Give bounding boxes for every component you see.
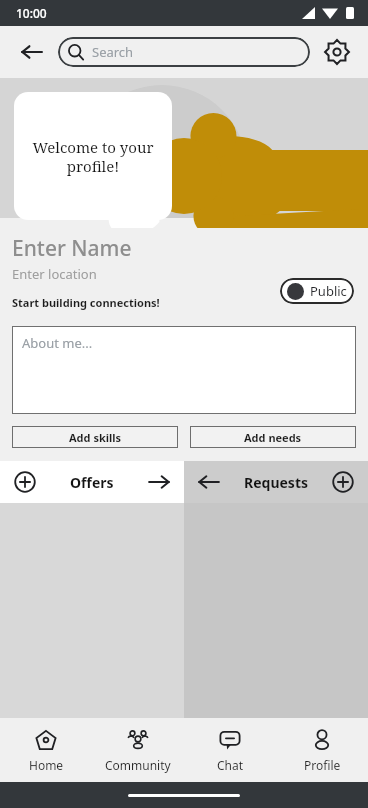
staticText: Enter location: [12, 265, 97, 283]
staticText: Add needs: [244, 430, 302, 445]
other: Add request: [332, 471, 354, 493]
other: Previous: [198, 471, 220, 493]
button[interactable]: Public: [280, 278, 354, 304]
staticText: Welcome to your profile!: [28, 137, 158, 176]
button[interactable]: Add skills: [12, 426, 178, 448]
staticText: Public: [310, 282, 347, 300]
staticText: Profile: [304, 757, 341, 773]
button[interactable]: Add needs: [190, 426, 356, 448]
staticText: Search: [92, 43, 134, 61]
button[interactable]: Back: [14, 34, 50, 70]
button[interactable]: Chat: [184, 718, 276, 782]
button[interactable]: Add offer: [0, 461, 184, 503]
staticText: Home: [29, 757, 64, 773]
staticText: 10:00: [16, 5, 47, 21]
staticText: Enter Name: [12, 234, 132, 263]
staticText: Community: [105, 757, 171, 773]
staticText: Chat: [217, 757, 244, 773]
staticText: Start building connections!: [12, 295, 160, 310]
staticText: Add skills: [69, 430, 122, 445]
button[interactable]: Search: [58, 37, 310, 67]
button[interactable]: Settings: [320, 35, 354, 69]
button[interactable]: Previous: [184, 461, 368, 503]
other: Add offer: [14, 471, 36, 493]
staticText: About me...: [22, 334, 93, 352]
button[interactable]: Home: [0, 718, 92, 782]
staticText: Requests: [244, 473, 308, 492]
button[interactable]: About me...: [12, 326, 356, 414]
staticText: Offers: [70, 473, 114, 492]
button[interactable]: Community: [92, 718, 184, 782]
button[interactable]: Profile: [276, 718, 368, 782]
other: Next: [148, 471, 170, 493]
